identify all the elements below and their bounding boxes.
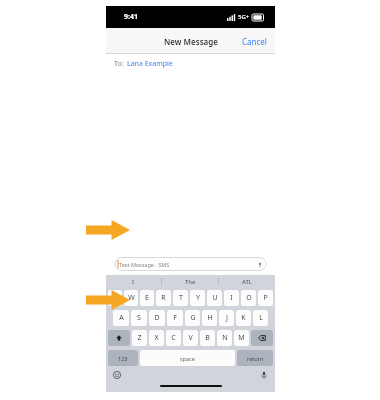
button[interactable]: W (124, 290, 138, 306)
staticText: Cancel (242, 36, 267, 47)
staticText: M (238, 333, 245, 343)
button[interactable]: G (185, 310, 200, 326)
staticText: X (154, 333, 159, 343)
button[interactable]: I (224, 290, 239, 306)
staticText: B (205, 333, 210, 343)
staticText: return (247, 355, 264, 362)
button[interactable]: I (106, 275, 161, 288)
button[interactable]: R (156, 290, 171, 306)
button[interactable]: return (237, 350, 273, 366)
button[interactable]: Emoji (111, 369, 123, 381)
button[interactable]: 123 (108, 350, 138, 366)
staticText: A (119, 313, 124, 323)
staticText: S (137, 313, 141, 323)
button[interactable]: space (140, 350, 235, 366)
staticText: Text Message · SMS (119, 261, 170, 268)
button[interactable]: L (253, 310, 268, 326)
button[interactable]: Cancel (234, 32, 275, 51)
button[interactable]: P (258, 290, 273, 306)
button[interactable]: C (166, 330, 181, 346)
button[interactable]: Z (132, 330, 147, 346)
staticText: 5G+ (238, 13, 250, 21)
button[interactable]: Text Message · SMS (115, 258, 266, 271)
button[interactable]: F (167, 310, 183, 326)
staticText: ATL (242, 278, 252, 286)
staticText: P (263, 293, 268, 303)
button[interactable]: Delete (251, 330, 273, 346)
button[interactable]: A (113, 310, 129, 326)
button[interactable]: S (131, 310, 147, 326)
staticText: The (185, 278, 196, 286)
staticText: J (226, 313, 228, 323)
staticText: New Message (164, 36, 218, 47)
button[interactable]: Y (190, 290, 205, 306)
staticText: O (246, 293, 252, 303)
button[interactable]: B (200, 330, 215, 346)
staticText: 9:41 (124, 12, 138, 22)
button[interactable]: K (236, 310, 251, 326)
staticText: space (180, 355, 195, 362)
staticText: Lana Example (127, 59, 173, 69)
staticText: I (132, 278, 135, 286)
staticText: H (207, 313, 213, 323)
button[interactable]: U (207, 290, 222, 306)
staticText: Z (137, 333, 142, 343)
button[interactable]: ATL (219, 275, 275, 288)
button[interactable]: J (219, 310, 234, 326)
staticText: To: (114, 59, 124, 69)
staticText: V (188, 333, 193, 343)
button[interactable]: V (183, 330, 198, 346)
staticText: E (145, 293, 149, 303)
button[interactable]: The (162, 275, 218, 288)
staticText: D (154, 313, 160, 323)
staticText: I (230, 293, 233, 303)
button[interactable]: Shift (108, 330, 130, 346)
button[interactable]: X (149, 330, 164, 346)
staticText: U (212, 293, 218, 303)
staticText: Q (112, 293, 118, 303)
button[interactable]: T (173, 290, 188, 306)
staticText: C (171, 333, 176, 343)
staticText: F (173, 313, 177, 323)
staticText: L (259, 313, 263, 323)
staticText: T (179, 293, 183, 303)
button[interactable]: O (241, 290, 256, 306)
staticText: Y (196, 293, 200, 303)
button[interactable]: M (234, 330, 249, 346)
staticText: K (241, 313, 246, 323)
staticText: G (190, 313, 196, 323)
button[interactable]: Q (108, 290, 122, 306)
button[interactable]: H (202, 310, 217, 326)
button[interactable]: E (140, 290, 154, 306)
staticText: 123 (118, 355, 128, 362)
button[interactable]: N (217, 330, 232, 346)
staticText: R (161, 293, 166, 303)
staticText: W (128, 293, 135, 303)
button[interactable]: D (149, 310, 165, 326)
button[interactable]: Dictation (258, 369, 270, 381)
button[interactable]: Lana Example (127, 59, 173, 69)
staticText: N (222, 333, 228, 343)
